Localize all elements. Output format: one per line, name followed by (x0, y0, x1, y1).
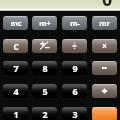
button[interactable]: Multiply (92, 39, 117, 53)
button[interactable]: m- (62, 16, 87, 30)
button[interactable]: C (3, 39, 28, 53)
button[interactable]: Equals (92, 107, 117, 120)
button[interactable]: Minus (92, 61, 117, 75)
button[interactable]: 7 (3, 61, 28, 75)
button[interactable]: 4 (3, 84, 28, 98)
staticText: 6 (72, 85, 78, 97)
button[interactable]: 5 (32, 84, 57, 98)
staticText: 3 (72, 108, 78, 120)
button[interactable]: 6 (62, 84, 87, 98)
staticText: 4 (13, 85, 19, 97)
staticText: m+ (39, 18, 51, 28)
button[interactable]: 8 (32, 61, 57, 75)
staticText: 7 (13, 62, 19, 74)
staticText: 1 (13, 108, 19, 120)
staticText: 9 (72, 62, 78, 74)
staticText: mr (99, 18, 110, 28)
staticText: mc (10, 18, 22, 28)
staticText: 8 (42, 62, 48, 74)
button[interactable]: Plus (92, 84, 117, 98)
button[interactable]: 3 (62, 107, 87, 120)
button[interactable]: 1 (3, 107, 28, 120)
button[interactable]: Plus minus (32, 39, 57, 53)
button[interactable]: mc (3, 16, 28, 30)
staticText: 0 (102, 0, 113, 12)
button[interactable]: m+ (32, 16, 57, 30)
button[interactable]: mr (92, 16, 117, 30)
staticText: m- (70, 18, 80, 28)
staticText: 5 (42, 85, 48, 97)
button[interactable]: 9 (62, 61, 87, 75)
staticText: 2 (42, 108, 48, 120)
button[interactable]: 2 (32, 107, 57, 120)
staticText: C (13, 41, 19, 52)
button[interactable]: Divide (62, 39, 87, 53)
